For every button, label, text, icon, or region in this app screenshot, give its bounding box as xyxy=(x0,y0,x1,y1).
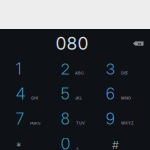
button[interactable]: Delete xyxy=(124,35,150,52)
staticText: 0 xyxy=(61,135,70,150)
staticText: 3 xyxy=(106,60,115,78)
button[interactable]: 5 xyxy=(61,81,106,106)
staticText: ABC xyxy=(75,71,84,75)
staticText: 6 xyxy=(106,85,115,103)
staticText: # xyxy=(112,138,119,150)
staticText: TUV xyxy=(76,121,85,125)
button[interactable]: 7 xyxy=(16,106,61,131)
staticText: 2 xyxy=(61,60,69,78)
staticText: 4 xyxy=(16,85,25,103)
staticText: MNO xyxy=(121,96,131,100)
button[interactable]: 6 xyxy=(106,81,150,106)
staticText: 7 xyxy=(16,110,24,128)
staticText: 9 xyxy=(106,110,115,128)
button[interactable]: 2 xyxy=(61,56,106,81)
button[interactable]: * xyxy=(16,131,61,150)
staticText: WXYZ xyxy=(121,121,134,125)
button[interactable]: 3 xyxy=(106,56,150,81)
staticText: DEF xyxy=(121,71,128,75)
staticText: 5 xyxy=(61,85,69,103)
staticText: 8 xyxy=(61,110,70,128)
staticText: + xyxy=(76,146,79,150)
button[interactable]: 9 xyxy=(106,106,150,131)
button[interactable]: 8 xyxy=(61,106,106,131)
staticText: 1 xyxy=(16,60,21,78)
staticText: 080 xyxy=(55,33,88,54)
button[interactable]: # xyxy=(106,131,150,150)
button[interactable]: 4 xyxy=(16,81,61,106)
button[interactable]: 0 xyxy=(61,131,106,150)
staticText: JKL xyxy=(75,96,82,100)
staticText: GHI xyxy=(31,96,38,100)
staticText: PQRS xyxy=(30,121,41,125)
button[interactable]: 1 xyxy=(16,56,61,81)
staticText: * xyxy=(16,140,21,150)
